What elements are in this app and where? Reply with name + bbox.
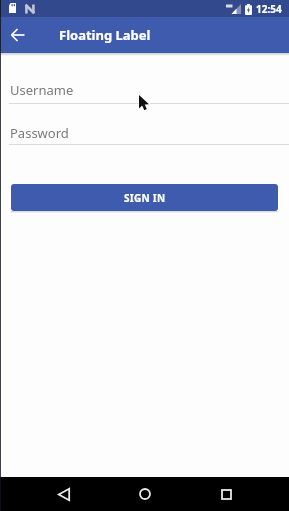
button[interactable]: SIGN IN <box>11 184 278 211</box>
button[interactable] <box>0 17 36 53</box>
staticText: Username <box>10 81 74 99</box>
button[interactable] <box>117 477 173 511</box>
button[interactable] <box>36 477 92 511</box>
staticText: 12:54 <box>256 2 282 16</box>
button[interactable] <box>198 477 254 511</box>
staticText: SIGN IN <box>124 191 166 205</box>
staticText: Floating Label <box>59 26 151 44</box>
staticText: Password <box>10 124 69 142</box>
